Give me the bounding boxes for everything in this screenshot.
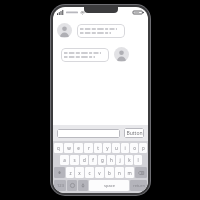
- staticText: a: [63, 157, 66, 163]
- button[interactable]: Contact avatar: [57, 23, 144, 38]
- staticText: n: [118, 170, 121, 176]
- staticText: y: [106, 145, 109, 151]
- staticText: h: [110, 157, 113, 163]
- button[interactable]: c: [85, 167, 94, 178]
- staticText: r: [88, 145, 90, 151]
- button[interactable]: t: [94, 143, 102, 153]
- button[interactable]: u: [112, 143, 120, 153]
- staticText: b: [108, 170, 111, 176]
- button[interactable]: o: [130, 143, 138, 153]
- button[interactable]: j: [116, 155, 124, 165]
- button[interactable]: [57, 129, 120, 138]
- staticText: j: [119, 157, 121, 163]
- button[interactable]: h: [107, 155, 115, 165]
- staticText: c: [88, 170, 91, 176]
- button[interactable]: b: [105, 167, 114, 178]
- button[interactable]: y: [103, 143, 111, 153]
- button[interactable]: Backspace: [135, 167, 147, 178]
- button[interactable]: v: [95, 167, 104, 178]
- button[interactable]: Space: [89, 180, 129, 191]
- button[interactable]: Numbers: [54, 180, 66, 191]
- staticText: o: [133, 145, 136, 151]
- button[interactable]: [80, 28, 122, 34]
- staticText: u: [115, 145, 118, 151]
- button[interactable]: m: [125, 167, 134, 178]
- staticText: p: [142, 145, 145, 151]
- button[interactable]: a: [60, 155, 69, 165]
- staticText: v: [98, 170, 101, 176]
- staticText: i: [124, 145, 126, 151]
- button[interactable]: [64, 52, 106, 58]
- staticText: return: [133, 183, 145, 188]
- button[interactable]: w: [64, 143, 73, 153]
- button[interactable]: Shift: [54, 167, 65, 178]
- staticText: q: [57, 145, 60, 151]
- button[interactable]: Return: [130, 180, 147, 191]
- button[interactable]: g: [98, 155, 106, 165]
- staticText: 123: [57, 183, 64, 188]
- staticText: g: [101, 157, 104, 163]
- staticText: w: [67, 145, 71, 151]
- button[interactable]: Voice input: [78, 180, 88, 191]
- staticText: f: [92, 157, 94, 163]
- button[interactable]: Contact avatar: [57, 47, 144, 62]
- button[interactable]: z: [66, 167, 74, 178]
- staticText: z: [69, 170, 72, 176]
- button[interactable]: k: [125, 155, 133, 165]
- button[interactable]: x: [75, 167, 84, 178]
- staticText: s: [73, 157, 76, 163]
- other: Contact avatar: [57, 23, 72, 38]
- staticText: t: [97, 145, 99, 151]
- staticText: d: [83, 157, 86, 163]
- button[interactable]: s: [70, 155, 79, 165]
- staticText: Button: [126, 130, 143, 137]
- button[interactable]: f: [89, 155, 97, 165]
- button[interactable]: p: [139, 143, 147, 153]
- button[interactable]: i: [121, 143, 129, 153]
- button[interactable]: Emoji: [67, 180, 77, 191]
- staticText: m: [127, 170, 132, 176]
- button[interactable]: d: [80, 155, 88, 165]
- staticText: space: [104, 183, 115, 188]
- button[interactable]: n: [115, 167, 124, 178]
- other: Contact avatar: [114, 47, 129, 62]
- staticText: e: [77, 145, 80, 151]
- button[interactable]: q: [54, 143, 63, 153]
- button[interactable]: l: [134, 155, 142, 165]
- button[interactable]: Button: [124, 128, 144, 138]
- button[interactable]: r: [84, 143, 93, 153]
- button[interactable]: e: [74, 143, 83, 153]
- staticText: k: [128, 157, 131, 163]
- staticText: x: [78, 170, 81, 176]
- staticText: l: [137, 157, 139, 163]
